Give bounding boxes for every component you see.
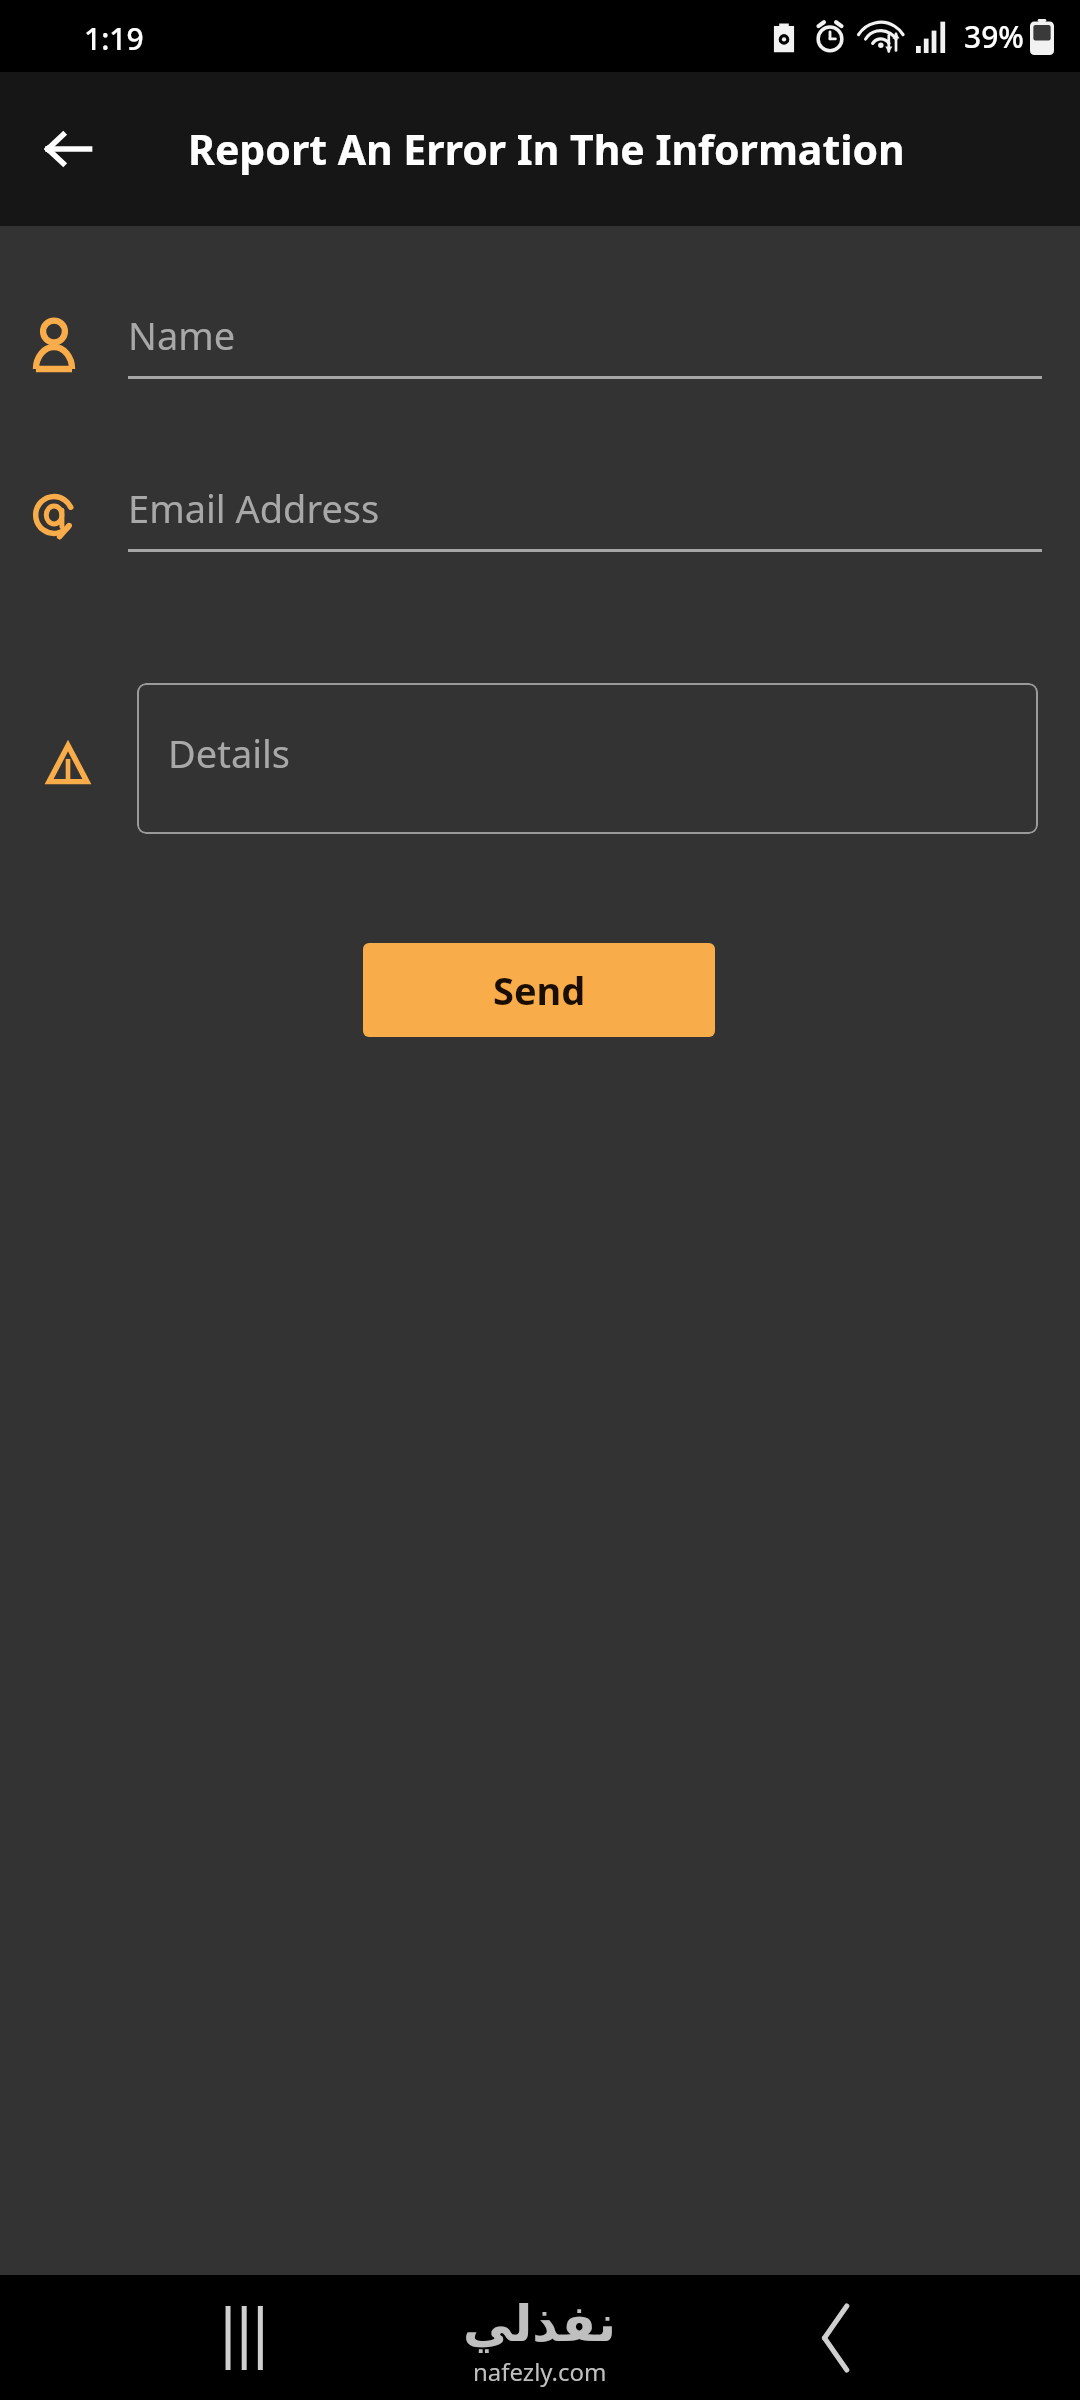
staticText: 39% — [964, 16, 1024, 57]
staticText: نفذلي — [463, 2295, 617, 2353]
staticText: nafezly.com — [473, 2355, 607, 2388]
staticText: Name — [128, 309, 236, 361]
button[interactable]: Back — [772, 2275, 900, 2400]
staticText: Report An Error In The Information — [188, 121, 905, 177]
staticText: 1:19 — [84, 18, 144, 59]
button[interactable]: Back — [22, 103, 114, 195]
staticText: Send — [493, 964, 586, 1016]
staticText: Email Address — [128, 482, 380, 534]
button[interactable]: Recent apps — [180, 2275, 308, 2400]
button[interactable]: Send — [363, 943, 715, 1037]
staticText: Details — [168, 727, 291, 779]
button[interactable]: Details — [137, 683, 1038, 834]
button[interactable]: Name — [128, 294, 1042, 379]
button[interactable]: Email Address — [128, 467, 1042, 552]
